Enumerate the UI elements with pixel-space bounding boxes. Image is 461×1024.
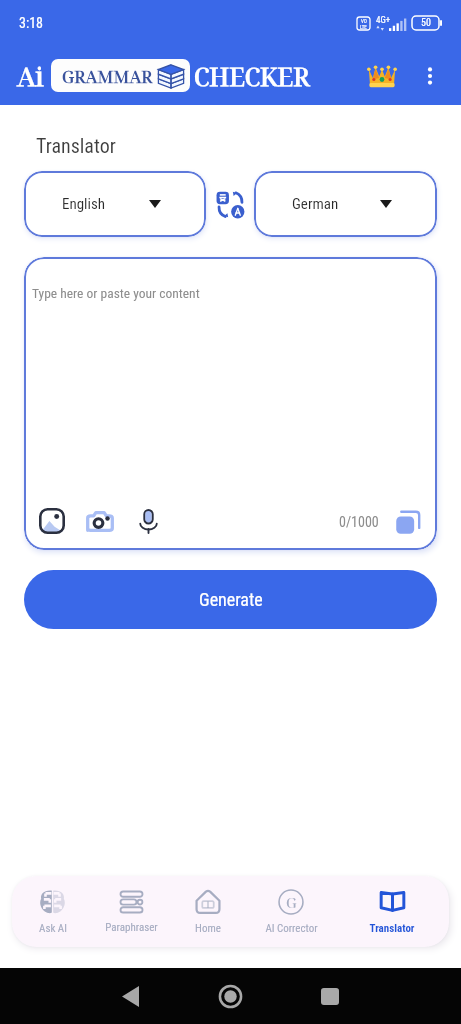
button[interactable]: More options xyxy=(409,55,451,97)
button[interactable]: Premium xyxy=(361,55,403,97)
button[interactable]: Paraphraser xyxy=(93,876,169,947)
staticText: 4G+ xyxy=(376,15,391,26)
staticText: English xyxy=(62,195,106,213)
staticText: VO xyxy=(361,18,367,24)
button[interactable]: Back xyxy=(110,976,150,1016)
button[interactable]: Camera xyxy=(80,501,120,541)
staticText: Ai xyxy=(17,58,44,93)
staticText: 3:18 xyxy=(19,15,44,31)
staticText: 0/1000 xyxy=(339,514,379,530)
button[interactable]: Recents xyxy=(310,976,350,1016)
button[interactable]: Home xyxy=(169,876,247,947)
staticText: G xyxy=(286,892,297,912)
button[interactable]: Ask AI xyxy=(12,876,93,947)
staticText: Paraphraser xyxy=(105,921,158,934)
button[interactable]: Home xyxy=(210,976,250,1016)
staticText: Translator xyxy=(36,134,116,157)
staticText: GRAMMAR xyxy=(62,65,153,88)
staticText: CHECKER xyxy=(194,59,310,93)
button[interactable]: G xyxy=(247,876,335,947)
staticText: LTE xyxy=(360,24,367,30)
button[interactable]: Translator xyxy=(335,876,449,947)
button[interactable]: Voice input xyxy=(128,501,168,541)
button[interactable]: Pick image xyxy=(32,501,72,541)
staticText: Home xyxy=(195,922,221,935)
button[interactable]: Paste xyxy=(393,507,423,537)
button[interactable]: Swap languages xyxy=(206,182,254,226)
staticText: Type here or paste your content xyxy=(32,285,200,301)
staticText: 50 xyxy=(421,17,431,29)
button[interactable]: Type here or paste your content xyxy=(24,257,437,550)
button[interactable]: Generate xyxy=(24,570,437,629)
staticText: Ask AI xyxy=(39,922,67,935)
button[interactable]: German xyxy=(254,171,437,237)
staticText: AI Corrector xyxy=(265,922,318,935)
button[interactable]: English xyxy=(24,171,206,237)
staticText: Translator xyxy=(369,922,415,935)
staticText: German xyxy=(292,195,339,213)
staticText: Generate xyxy=(199,589,263,610)
